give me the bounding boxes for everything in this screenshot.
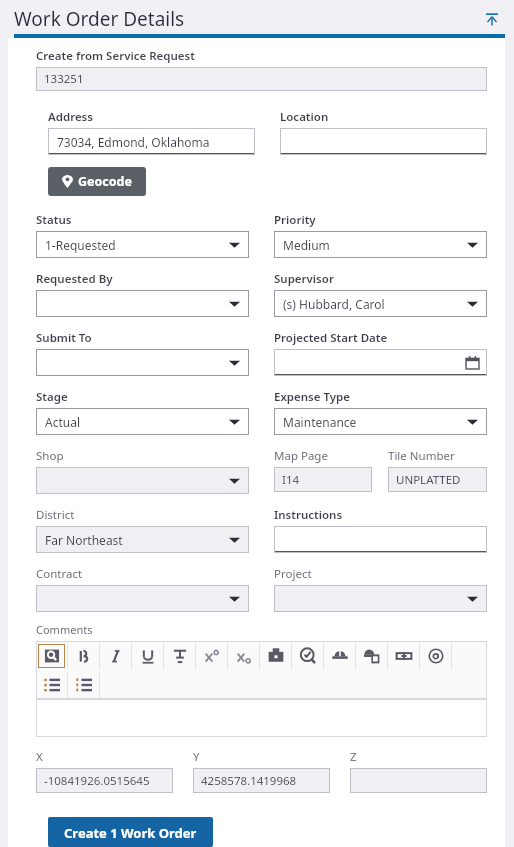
staticText: 1-Requested bbox=[45, 237, 116, 253]
staticText: Expense Type bbox=[274, 389, 351, 405]
staticText: Map Page bbox=[274, 448, 328, 464]
staticText: Maintenance bbox=[283, 414, 357, 430]
button[interactable]: Maintenance bbox=[274, 408, 487, 435]
button[interactable] bbox=[350, 768, 487, 793]
button[interactable]: Numbered list bbox=[68, 671, 99, 699]
staticText: District bbox=[36, 507, 75, 523]
button[interactable]: Actual bbox=[36, 408, 249, 435]
button[interactable] bbox=[36, 699, 487, 737]
button[interactable]: Collapse bbox=[481, 8, 503, 30]
button[interactable]: Create 1 Work Order bbox=[48, 817, 213, 847]
staticText: Status bbox=[36, 212, 72, 228]
staticText: Requested By bbox=[36, 271, 113, 287]
button[interactable]: Superscript bbox=[196, 642, 227, 670]
button[interactable]: Far Northeast bbox=[36, 526, 249, 553]
button[interactable]: 133251 bbox=[36, 67, 487, 91]
staticText: Shop bbox=[36, 448, 64, 464]
button[interactable] bbox=[274, 526, 487, 553]
button[interactable]: -10841926.0515645 bbox=[36, 768, 173, 793]
staticText: Location bbox=[280, 109, 329, 125]
button[interactable] bbox=[36, 290, 249, 317]
button[interactable]: UNPLATTED bbox=[388, 467, 487, 492]
button[interactable]: Strikethrough bbox=[164, 642, 195, 670]
button[interactable]: Mention bbox=[420, 642, 451, 670]
staticText: Submit To bbox=[36, 330, 92, 346]
staticText: Instructions bbox=[274, 507, 343, 523]
staticText: Geocode bbox=[78, 173, 132, 190]
button[interactable]: Find bbox=[38, 644, 65, 668]
staticText: Work Order Details bbox=[14, 6, 185, 32]
button[interactable] bbox=[274, 585, 487, 612]
staticText: Create 1 Work Order bbox=[64, 824, 197, 840]
staticText: X bbox=[36, 749, 43, 765]
staticText: Supervisor bbox=[274, 271, 334, 287]
staticText: Priority bbox=[274, 212, 316, 228]
button[interactable]: Geocode bbox=[48, 167, 146, 196]
button[interactable]: Italic bbox=[100, 642, 131, 670]
button[interactable] bbox=[36, 349, 249, 376]
staticText: Address bbox=[48, 109, 93, 125]
staticText: Tile Number bbox=[388, 448, 455, 464]
staticText: Medium bbox=[283, 237, 330, 253]
other: Pick date bbox=[466, 356, 479, 369]
staticText: 4258578.1419968 bbox=[201, 773, 297, 789]
staticText: 73034, Edmond, Oklahoma bbox=[57, 134, 210, 150]
staticText: I14 bbox=[282, 472, 300, 488]
button[interactable]: Link bbox=[388, 642, 419, 670]
staticText: Z bbox=[350, 749, 357, 765]
staticText: Stage bbox=[36, 389, 68, 405]
staticText: Contract bbox=[36, 566, 83, 582]
button[interactable]: Inspection bbox=[292, 642, 323, 670]
staticText: Projected Start Date bbox=[274, 330, 388, 346]
staticText: 133251 bbox=[44, 71, 84, 87]
button[interactable]: I14 bbox=[274, 467, 372, 492]
button[interactable]: Work Order bbox=[356, 642, 387, 670]
staticText: Actual bbox=[45, 414, 81, 430]
staticText: Project bbox=[274, 566, 312, 582]
button[interactable]: Bulleted list bbox=[36, 671, 67, 699]
button[interactable]: 73034, Edmond, Oklahoma bbox=[48, 128, 255, 155]
button[interactable]: 4258578.1419968 bbox=[193, 768, 330, 793]
button[interactable]: (s) Hubbard, Carol bbox=[274, 290, 487, 317]
button[interactable]: Subscript bbox=[228, 642, 259, 670]
button[interactable]: 1-Requested bbox=[36, 231, 249, 258]
staticText: Comments bbox=[36, 622, 93, 637]
button[interactable] bbox=[36, 585, 249, 612]
button[interactable] bbox=[36, 467, 249, 494]
button[interactable]: Underline bbox=[132, 642, 163, 670]
staticText: Create from Service Request bbox=[36, 48, 195, 64]
staticText: (s) Hubbard, Carol bbox=[283, 296, 385, 312]
staticText: Y bbox=[193, 749, 200, 765]
button[interactable]: Medium bbox=[274, 231, 487, 258]
staticText: Far Northeast bbox=[45, 532, 123, 548]
button[interactable]: Pick date bbox=[274, 349, 487, 376]
button[interactable]: Bold bbox=[68, 642, 99, 670]
button[interactable]: Asset bbox=[260, 642, 291, 670]
staticText: -10841926.0515645 bbox=[44, 773, 150, 789]
button[interactable]: Crew bbox=[324, 642, 355, 670]
button[interactable] bbox=[280, 128, 487, 155]
staticText: UNPLATTED bbox=[396, 472, 461, 488]
